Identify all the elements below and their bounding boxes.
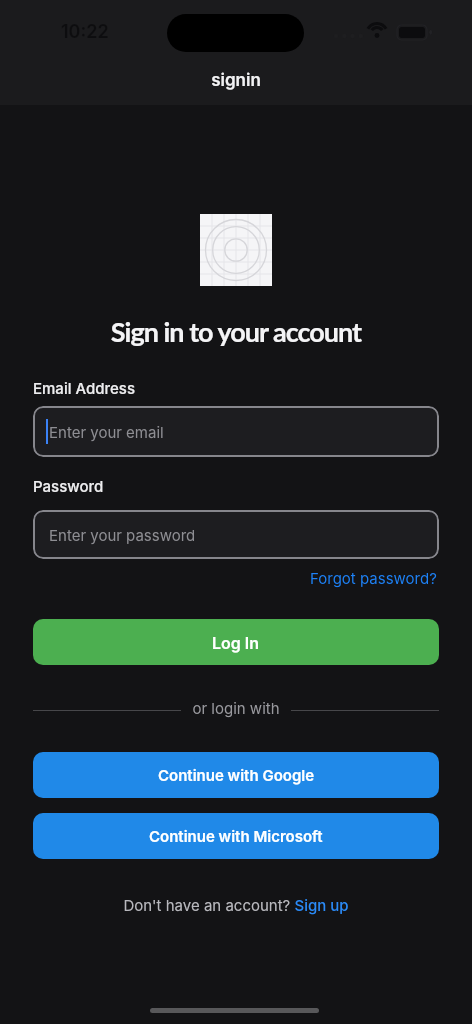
staticText: Enter your password [49,526,196,544]
button[interactable]: Enter your password [33,510,439,559]
staticText: or login with [0,699,472,717]
button[interactable]: Enter your email [33,406,439,457]
button[interactable]: Don't have an account? Sign up [0,896,472,914]
staticText: Password [33,477,104,495]
staticText: Sign in to your account [0,315,472,347]
staticText: Log In [212,633,260,652]
staticText: Email Address [33,379,135,397]
staticText: 10:22 [61,21,109,43]
button[interactable]: Forgot password? [310,569,437,587]
button[interactable]: Log In [33,619,439,665]
staticText: Continue with Microsoft [149,827,323,845]
staticText: Continue with Google [158,766,315,784]
staticText: Enter your email [49,423,164,441]
button[interactable]: Continue with Google [33,752,439,798]
button[interactable]: Continue with Microsoft [33,813,439,859]
staticText: signin [0,70,472,91]
